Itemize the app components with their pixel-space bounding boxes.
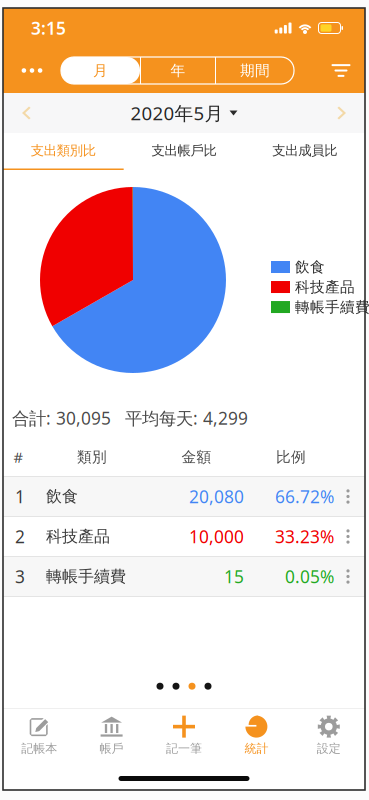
button[interactable]: 年 [140,57,216,84]
staticText: # [13,447,22,467]
staticText: 年 [170,61,185,79]
staticText: 飲食 [295,258,325,276]
button[interactable]: 支出類別比 [3,132,124,170]
button[interactable]: More options [3,50,61,90]
staticText: 記一筆 [166,741,202,756]
button[interactable]: 記一筆 [148,710,220,760]
button[interactable]: 設定 [293,710,365,760]
staticText: 飲食 [46,487,78,506]
button[interactable]: 記帳本 [3,710,75,760]
staticText: 33.23% [275,525,334,548]
staticText: 統計 [244,741,268,756]
staticText: 比例 [276,448,306,466]
staticText: 支出帳戶比 [151,142,216,159]
staticText: 記帳本 [21,741,57,756]
button[interactable]: 月 [61,57,140,84]
staticText: 轉帳手續費 [46,567,126,586]
staticText: 10,000 [189,525,244,548]
staticText: 20,080 [189,485,244,508]
staticText: 期間 [240,61,270,79]
staticText: 科技產品 [295,278,355,296]
staticText: 支出類別比 [31,142,96,159]
staticText: 科技產品 [46,527,110,546]
button[interactable]: 統計 [220,710,293,760]
staticText: 金額 [181,448,211,466]
staticText: 設定 [317,741,341,756]
staticText: 平均每天: 4,299 [125,406,248,429]
button[interactable]: Previous month [3,93,49,133]
staticText: 66.72% [275,485,334,508]
button[interactable]: 期間 [216,57,294,84]
staticText: 2020年5月 [130,101,223,125]
staticText: 合計: 30,095 [12,406,111,429]
staticText: 類別 [77,448,107,466]
staticText: 1 [15,485,25,508]
button[interactable]: 支出成員比 [244,132,365,170]
staticText: 轉帳手續費 [295,298,369,316]
button[interactable]: Filter [317,50,365,90]
staticText: 15 [224,565,244,588]
button[interactable]: 1 [3,477,365,516]
staticText: 帳戶 [100,741,124,756]
button[interactable]: 3 [3,557,365,596]
button[interactable]: 支出帳戶比 [124,132,244,170]
button[interactable]: 帳戶 [75,710,148,760]
staticText: 3:15 [31,16,66,39]
staticText: 3 [15,565,25,588]
staticText: 支出成員比 [272,142,337,159]
button[interactable]: 2020年5月 [130,93,237,133]
staticText: 月 [93,61,108,79]
staticText: 2 [15,525,25,548]
staticText: 0.05% [285,565,334,588]
button[interactable]: Next month [319,93,365,133]
button[interactable]: 2 [3,517,365,556]
